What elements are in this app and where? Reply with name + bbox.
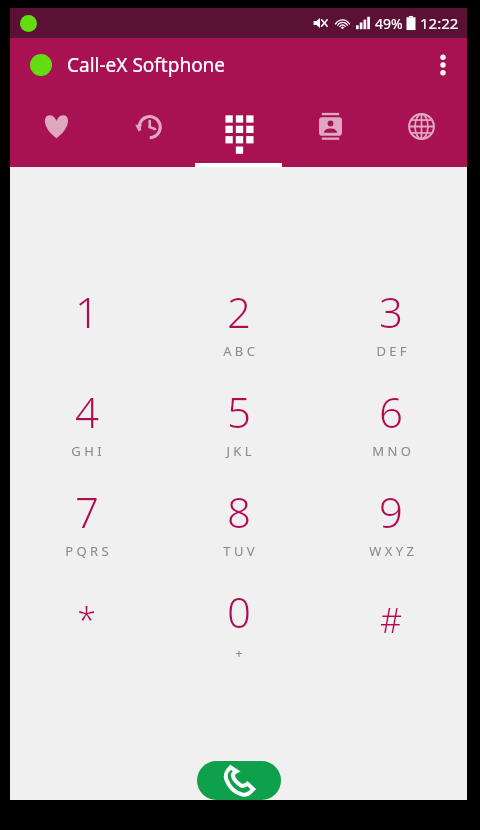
staticText: M N O [372, 442, 411, 460]
staticText: T U V [223, 542, 255, 560]
staticText: 8 [227, 483, 251, 540]
button[interactable]: 9 [315, 479, 467, 579]
button[interactable]: Network [376, 91, 467, 167]
button[interactable]: 1 [10, 279, 163, 379]
staticText: 1 [75, 283, 99, 340]
button[interactable]: Dialpad [194, 91, 285, 167]
staticText: 5 [227, 383, 251, 440]
staticText: + [235, 644, 243, 662]
button[interactable]: 6 [315, 379, 467, 479]
staticText: P Q R S [65, 542, 109, 560]
staticText: A B C [223, 342, 255, 360]
staticText: 49% [375, 14, 403, 33]
staticText: # [380, 597, 402, 643]
staticText: 0 [227, 583, 251, 640]
staticText: Call-eX Softphone [67, 52, 226, 78]
button[interactable]: 5 [163, 379, 315, 479]
button[interactable]: Recent calls [102, 91, 194, 167]
button[interactable]: 0 [163, 579, 315, 675]
staticText: G H I [71, 442, 102, 460]
staticText: 4 [75, 383, 99, 440]
button[interactable]: 3 [315, 279, 467, 379]
button[interactable]: Call [197, 761, 281, 800]
staticText: W X Y Z [369, 542, 414, 560]
staticText: 12:22 [420, 13, 459, 33]
button[interactable]: Favorites [10, 91, 102, 167]
staticText: J K L [226, 442, 252, 460]
button[interactable]: * [10, 579, 163, 675]
staticText: 6 [379, 383, 403, 440]
staticText: 9 [379, 483, 403, 540]
staticText: D E F [376, 342, 407, 360]
button[interactable]: # [315, 579, 467, 675]
staticText: 7 [75, 483, 99, 540]
button[interactable]: 7 [10, 479, 163, 579]
staticText: 3 [379, 283, 403, 340]
staticText: 2 [227, 283, 251, 340]
button[interactable]: More options [419, 38, 467, 91]
button[interactable]: 8 [163, 479, 315, 579]
button[interactable]: 4 [10, 379, 163, 479]
staticText: * [77, 597, 96, 643]
button[interactable]: Contacts [285, 91, 376, 167]
button[interactable]: 2 [163, 279, 315, 379]
